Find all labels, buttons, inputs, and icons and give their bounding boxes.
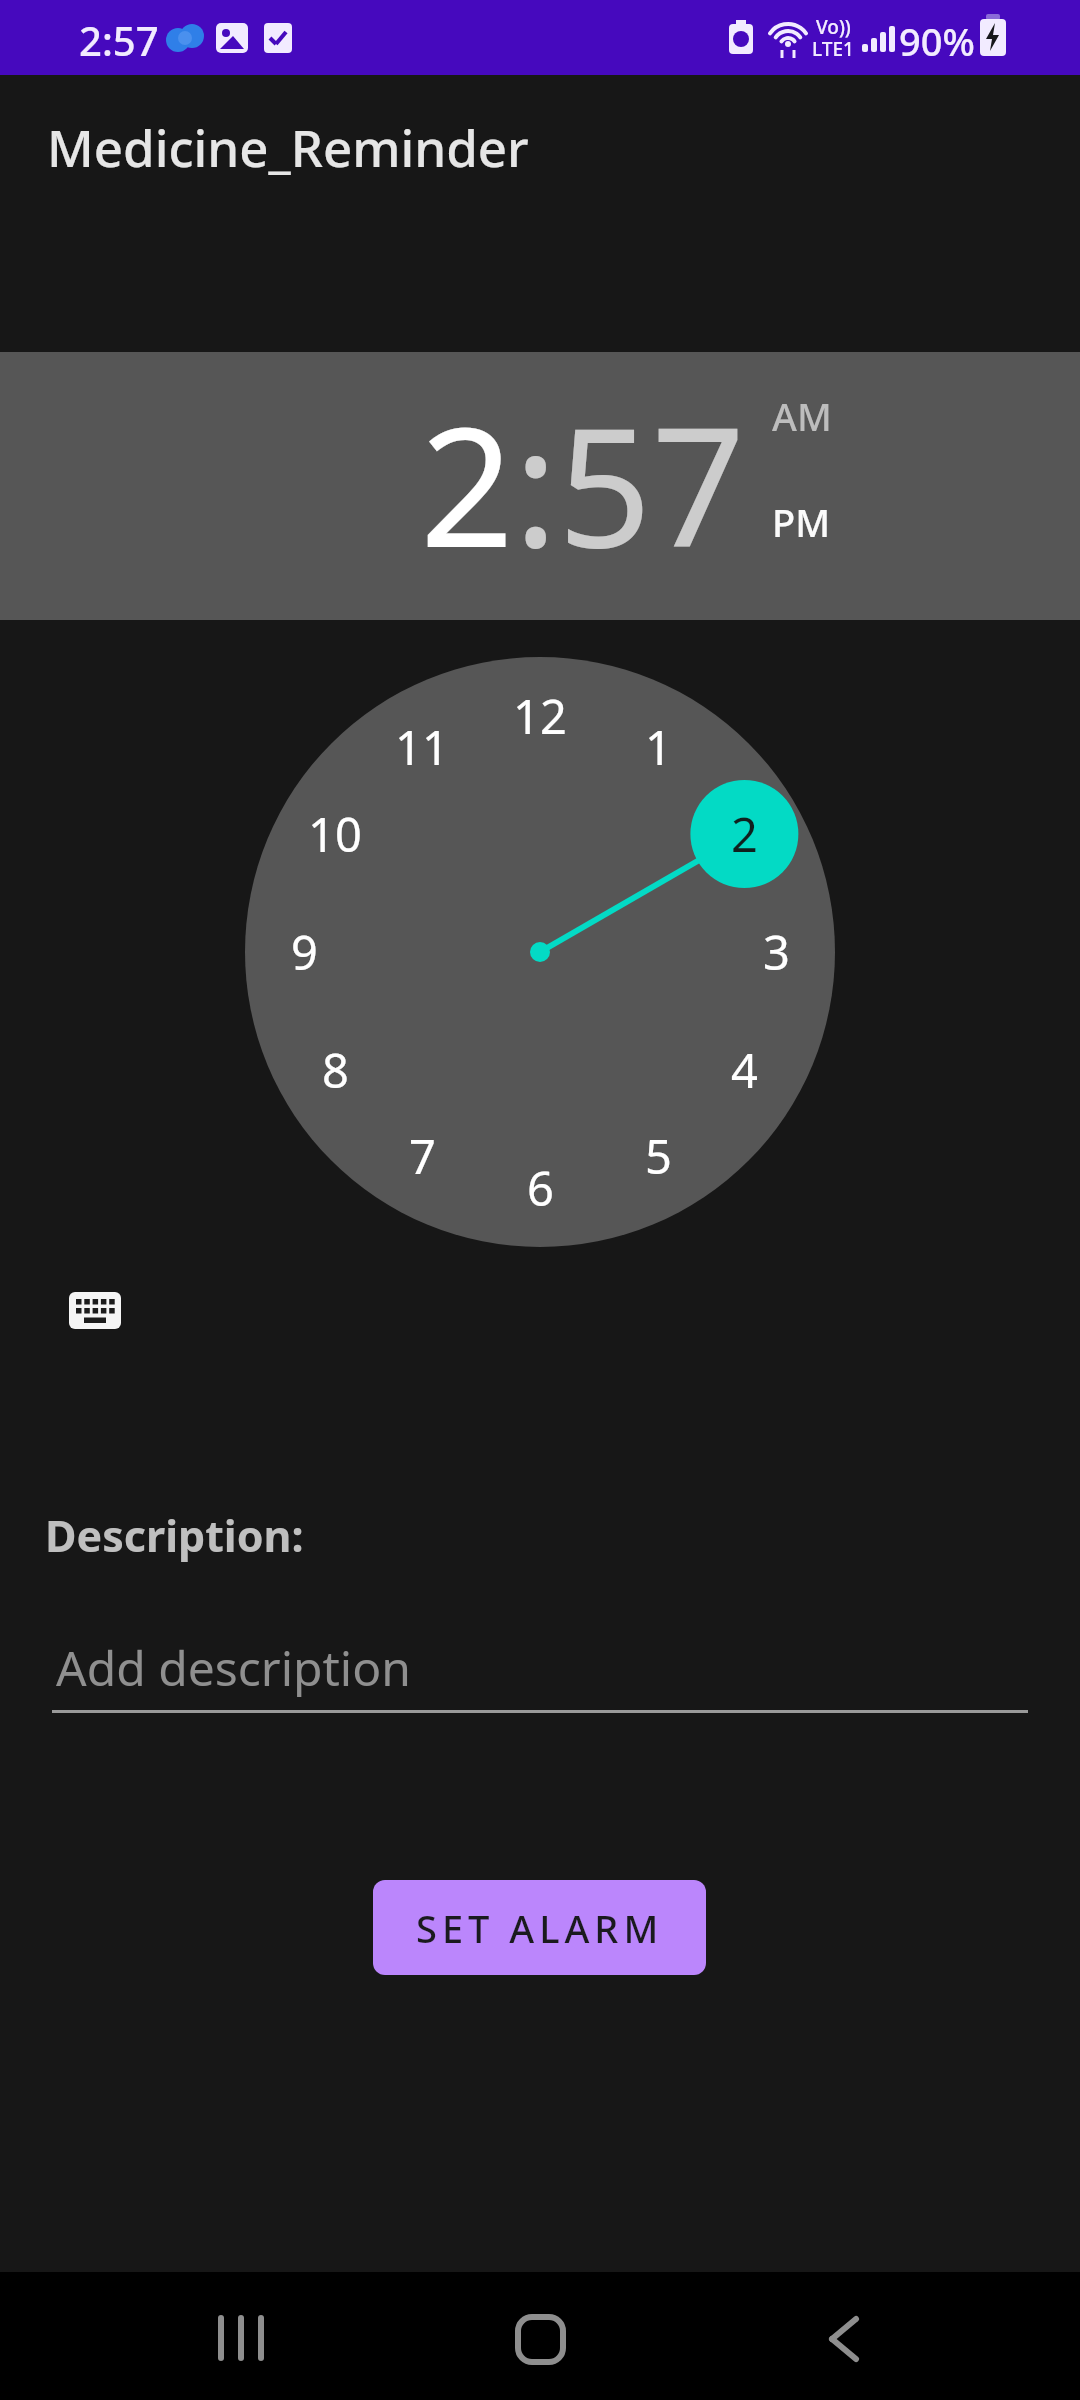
staticText: 90%: [899, 15, 975, 67]
staticText: 12: [513, 684, 567, 748]
staticText: 5: [645, 1124, 672, 1188]
staticText: PM: [772, 496, 831, 548]
button[interactable]: [360, 2272, 720, 2400]
staticText: 3: [763, 920, 790, 984]
staticText: 2:57: [420, 372, 746, 595]
staticText: 2:57: [79, 13, 159, 67]
staticText: 8: [322, 1038, 349, 1102]
staticText: 6: [527, 1156, 554, 1220]
staticText: 1: [645, 715, 672, 779]
staticText: AM: [772, 390, 832, 442]
staticText: Medicine_Reminder: [47, 112, 529, 181]
staticText: Add description: [56, 1635, 411, 1700]
button[interactable]: [190, 2295, 290, 2385]
staticText: 2: [731, 802, 758, 866]
staticText: 10: [308, 802, 362, 866]
staticText: LTE1: [812, 36, 854, 62]
button[interactable]: Add description: [52, 1630, 1028, 1713]
staticText: Vo)): [816, 14, 851, 40]
button[interactable]: [0, 2272, 360, 2400]
staticText: 11: [395, 715, 449, 779]
staticText: 9: [291, 920, 318, 984]
button[interactable]: [720, 2272, 1080, 2400]
staticText: 4: [731, 1038, 758, 1102]
staticText: Description:: [45, 1506, 304, 1565]
staticText: 7: [409, 1124, 436, 1188]
button[interactable]: [69, 1292, 121, 1329]
staticText: SET ALARM: [416, 1902, 664, 1954]
button[interactable]: SET ALARM: [373, 1880, 706, 1975]
